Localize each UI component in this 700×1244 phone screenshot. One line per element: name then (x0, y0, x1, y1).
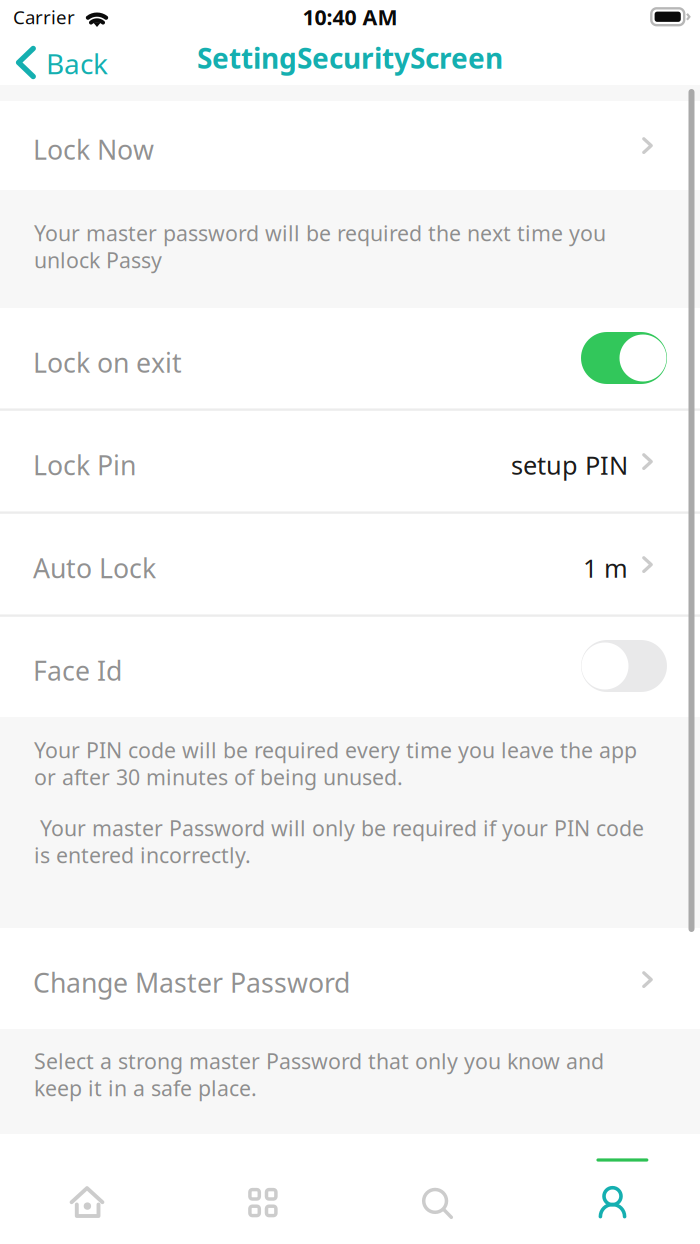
staticText: Back (46, 45, 108, 82)
staticText: Auto Lock (33, 550, 156, 586)
staticText: Change Master Password (33, 965, 350, 1000)
staticText: SettingSecurityScreen (197, 39, 503, 77)
staticText: 1 m (583, 551, 628, 585)
staticText: unlock Passy (34, 246, 162, 274)
staticText: Your PIN code will be required every tim… (34, 736, 637, 764)
staticText: 10:40 AM (302, 3, 397, 31)
staticText: Lock Pin (33, 447, 136, 483)
button[interactable]: Back (12, 40, 127, 86)
button[interactable]: Change Master Password (0, 928, 700, 1029)
button[interactable]: Profile (525, 1134, 700, 1244)
button[interactable] (581, 640, 667, 692)
staticText: Carrier (13, 5, 75, 29)
staticText: Lock Now (33, 132, 154, 167)
staticText: setup PIN (511, 448, 628, 482)
button[interactable]: Lock Now (0, 101, 700, 190)
button[interactable]: Search (350, 1134, 525, 1244)
button[interactable]: Auto Lock (0, 513, 700, 615)
staticText: Select a strong master Password that onl… (34, 1047, 604, 1075)
staticText: Lock on exit (33, 345, 182, 380)
button[interactable] (581, 332, 667, 384)
staticText: or after 30 minutes of being unused. (34, 763, 403, 791)
button[interactable]: Home (0, 1134, 175, 1244)
staticText: is entered incorrectly. (34, 841, 251, 869)
staticText: Your master Password will only be requir… (34, 814, 644, 842)
button[interactable]: Lock Pin (0, 410, 700, 512)
staticText: Face Id (33, 653, 122, 688)
staticText: keep it in a safe place. (34, 1074, 257, 1102)
staticText: Your master password will be required th… (34, 219, 606, 247)
button[interactable]: Categories (175, 1134, 350, 1244)
